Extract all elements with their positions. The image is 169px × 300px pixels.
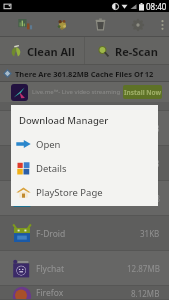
staticText: Live.me™- Live video streaming	[32, 88, 123, 96]
staticText: F-Droid	[36, 228, 140, 240]
staticText: Clean All	[27, 44, 75, 59]
button[interactable]: Firefox	[0, 286, 169, 300]
staticText: Details	[36, 162, 67, 175]
staticText: 8.12MB	[131, 288, 160, 299]
button[interactable]: ColorNote	[0, 111, 169, 146]
staticText: There Are 361.82MB Cache Files Of 12 app…	[15, 69, 169, 79]
staticText: 31KB	[140, 228, 160, 239]
staticText: Download Manager	[19, 114, 109, 127]
button[interactable]: Settings	[119, 12, 157, 37]
button[interactable]: Details	[11, 156, 158, 180]
staticText: Open	[36, 138, 61, 151]
button[interactable]: Junk	[44, 12, 81, 37]
button[interactable]: Open	[11, 132, 158, 156]
button[interactable]: Statistics	[7, 12, 44, 37]
staticText: 1.03MB	[131, 123, 160, 134]
staticText: ColorNote	[36, 123, 131, 135]
staticText: Install Now	[124, 88, 162, 97]
staticText: Flychat	[36, 263, 127, 275]
button[interactable]: Install Now	[123, 85, 162, 99]
staticText: 9.84MB	[131, 158, 160, 169]
staticText: Chrome	[36, 158, 131, 170]
staticText: Re-Scan	[115, 44, 158, 59]
button[interactable]: Re-Scan	[85, 37, 169, 65]
button[interactable]: There Are 361.82MB Cache Files Of 12 app…	[0, 65, 169, 82]
button[interactable]: Flychat	[0, 251, 169, 286]
button[interactable]: Chrome	[0, 146, 169, 181]
button[interactable]: Clean All	[0, 37, 84, 65]
staticText: Firefox	[36, 287, 131, 299]
staticText: Download Manager	[36, 193, 127, 205]
button[interactable]: PlayStore Page	[11, 180, 158, 204]
staticText: 37.02MB	[127, 193, 160, 204]
button[interactable]: More options	[155, 12, 169, 37]
staticText: 08:40	[146, 1, 167, 12]
staticText: PlayStore Page	[36, 186, 103, 199]
staticText: 12.87MB	[127, 263, 160, 274]
button[interactable]: Download Manager	[0, 181, 169, 216]
button[interactable]: F-Droid	[0, 216, 169, 251]
button[interactable]: Clean	[81, 12, 119, 37]
